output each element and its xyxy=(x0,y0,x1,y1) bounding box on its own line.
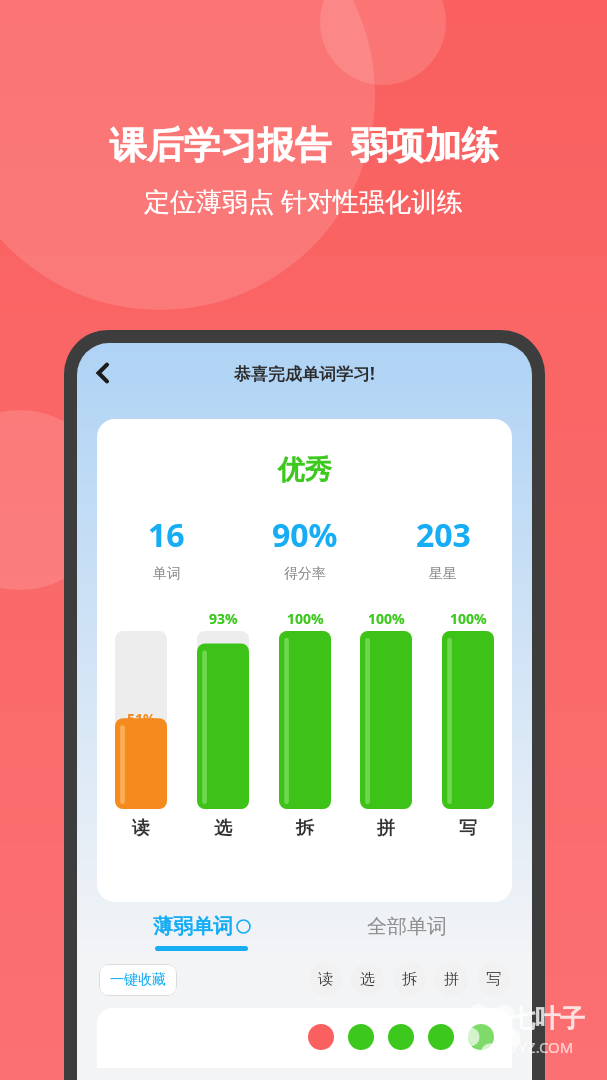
button[interactable]: 写 xyxy=(477,963,510,996)
staticText: 90% xyxy=(272,513,338,557)
staticText: 定位薄弱点 针对性强化训练 xyxy=(144,183,463,219)
button[interactable]: 读 xyxy=(309,963,342,996)
staticText: 拆 xyxy=(402,970,417,989)
staticText: 拼 xyxy=(444,970,459,989)
staticText: 100% xyxy=(287,609,324,628)
staticText: 拆 xyxy=(296,817,314,840)
staticText: 得分率 xyxy=(284,565,326,583)
button[interactable]: 拆 xyxy=(393,963,426,996)
button[interactable]: 选 xyxy=(351,963,384,996)
staticText: 16 xyxy=(148,513,185,557)
staticText: 写 xyxy=(459,817,477,840)
staticText: 7YZ.COM xyxy=(510,1037,574,1057)
staticText: 恭喜完成单词学习! xyxy=(234,362,375,385)
staticText: 一键收藏 xyxy=(110,971,166,989)
staticText: 100% xyxy=(450,609,487,628)
staticText: 读 xyxy=(318,970,333,989)
staticText: 全部单词 xyxy=(367,914,447,939)
staticText: 优秀 xyxy=(97,453,512,487)
staticText: 51% xyxy=(127,709,156,728)
staticText: 拼 xyxy=(377,817,395,840)
button[interactable]: 薄弱单词 xyxy=(99,914,304,951)
staticText: 203 xyxy=(416,513,471,557)
staticText: 写 xyxy=(486,970,501,989)
staticText: 读 xyxy=(132,817,150,840)
button[interactable]: Back xyxy=(81,351,125,395)
button[interactable]: 拼 xyxy=(435,963,468,996)
staticText: 七叶子 xyxy=(510,1003,585,1034)
staticText: 100% xyxy=(368,609,405,628)
staticText: 单词 xyxy=(153,565,181,583)
button[interactable]: 全部单词 xyxy=(304,914,510,939)
staticText: 93% xyxy=(209,609,238,628)
staticText: 星星 xyxy=(429,565,457,583)
staticText: 选 xyxy=(360,970,375,989)
staticText: 课后学习报告 弱项加练 xyxy=(109,118,499,169)
staticText: 选 xyxy=(214,817,232,840)
staticText: 薄弱单词 xyxy=(153,914,233,939)
button[interactable]: 一键收藏 xyxy=(99,964,177,996)
